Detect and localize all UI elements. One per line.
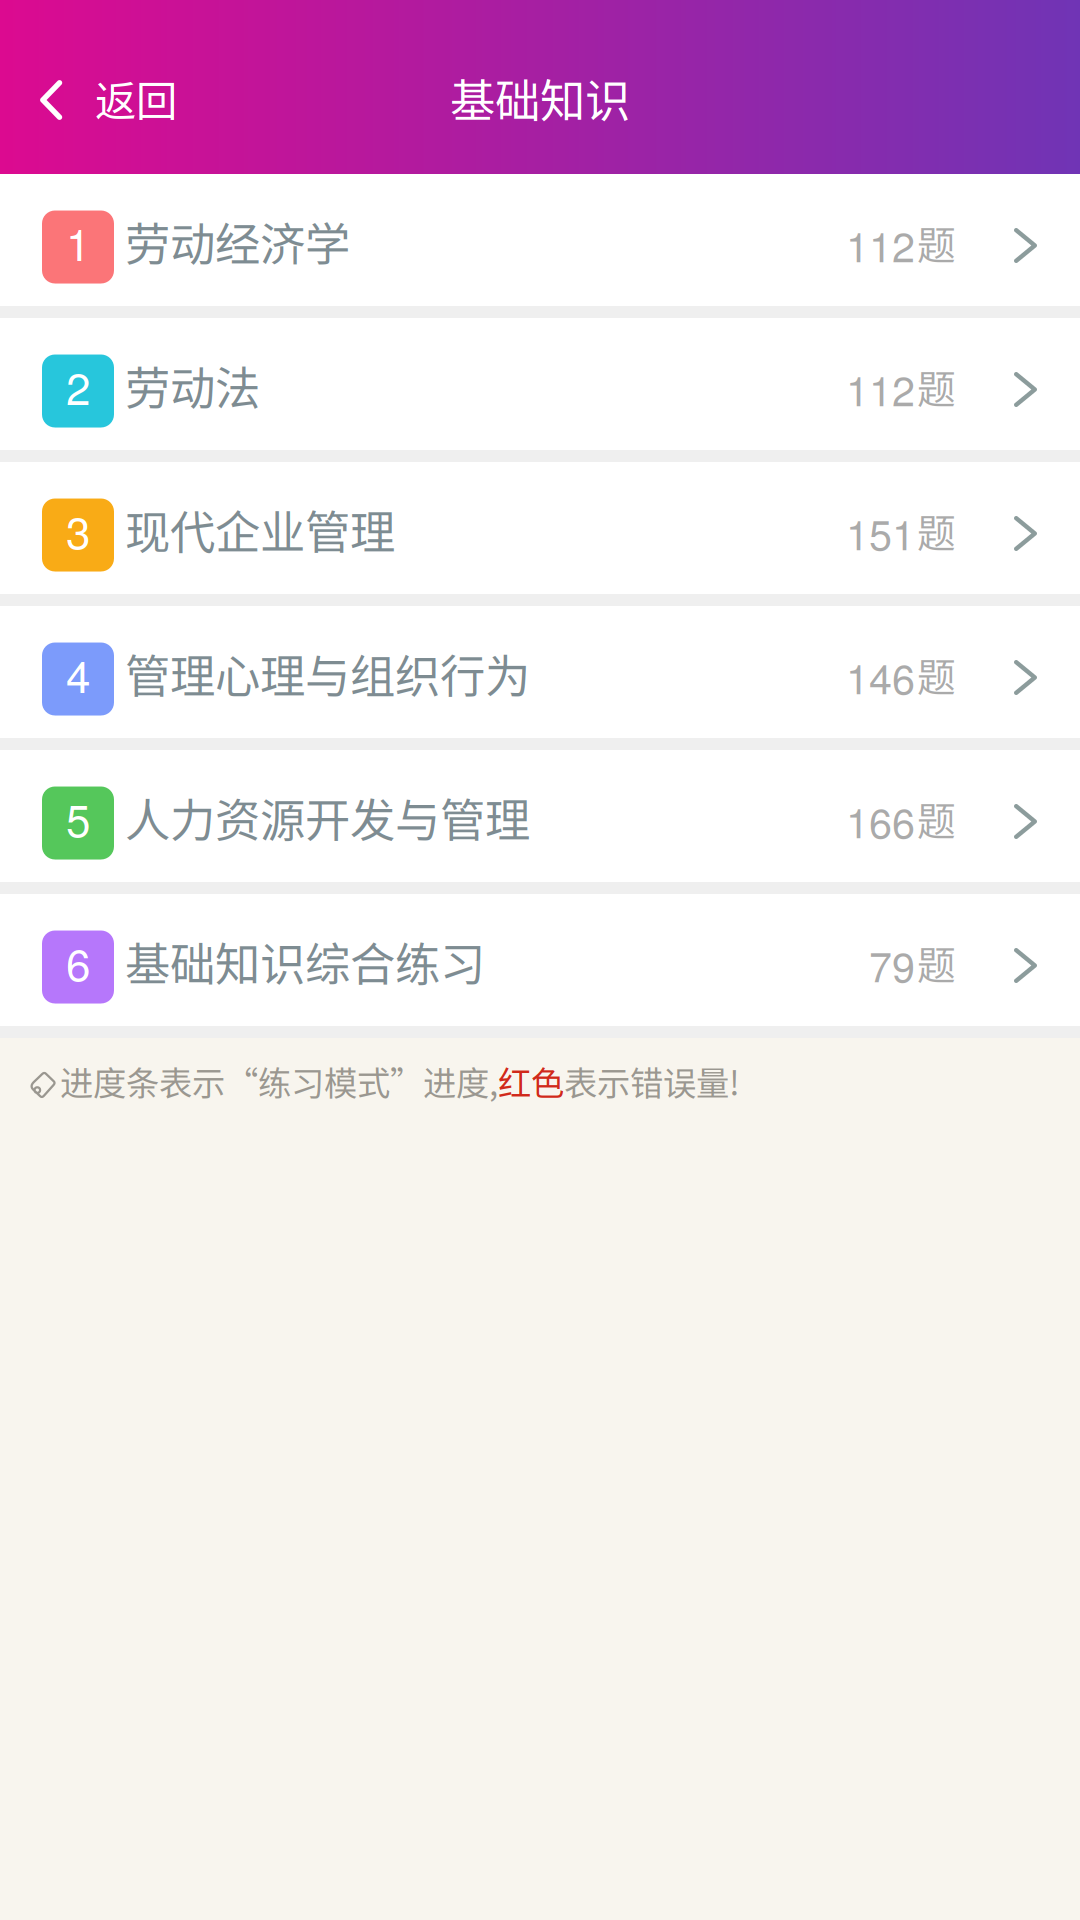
staticText: 151 — [846, 503, 915, 562]
staticText: 112 — [846, 215, 915, 274]
staticText: 1 — [66, 210, 90, 273]
staticText: 题 — [917, 502, 956, 558]
staticText: 现代企业管理 — [125, 497, 395, 562]
button[interactable]: 3 — [0, 462, 1080, 594]
staticText: 题 — [917, 358, 956, 414]
staticText: 题 — [917, 646, 956, 702]
staticText: 4 — [66, 642, 90, 705]
staticText: 112 — [846, 359, 915, 418]
staticText: 题 — [917, 790, 956, 846]
staticText: 返回 — [95, 68, 177, 128]
button[interactable]: 2 — [0, 318, 1080, 450]
staticText: 基础知识综合练习 — [125, 929, 485, 994]
button[interactable]: 5 — [0, 750, 1080, 882]
staticText: 表示错误量! — [564, 1057, 740, 1105]
staticText: 劳动法 — [125, 353, 260, 418]
button[interactable]: 1 — [0, 174, 1080, 306]
staticText: 劳动经济学 — [125, 209, 350, 274]
staticText: 5 — [66, 786, 90, 849]
staticText: 3 — [66, 498, 90, 561]
button[interactable]: 返回 — [0, 41, 207, 159]
staticText: 79 — [869, 935, 915, 994]
staticText: 146 — [846, 647, 915, 706]
staticText: 管理心理与组织行为 — [125, 641, 530, 706]
staticText: 基础知识 — [450, 65, 630, 131]
staticText: 题 — [917, 214, 956, 270]
staticText: 进度条表示“练习模式”进度, — [60, 1057, 498, 1105]
staticText: 人力资源开发与管理 — [125, 785, 530, 850]
button[interactable]: 6 — [0, 894, 1080, 1026]
staticText: 红色 — [498, 1057, 564, 1105]
staticText: 题 — [917, 934, 956, 990]
staticText: 6 — [66, 930, 90, 993]
staticText: 166 — [846, 791, 915, 850]
staticText: 2 — [66, 354, 90, 417]
button[interactable]: 4 — [0, 606, 1080, 738]
